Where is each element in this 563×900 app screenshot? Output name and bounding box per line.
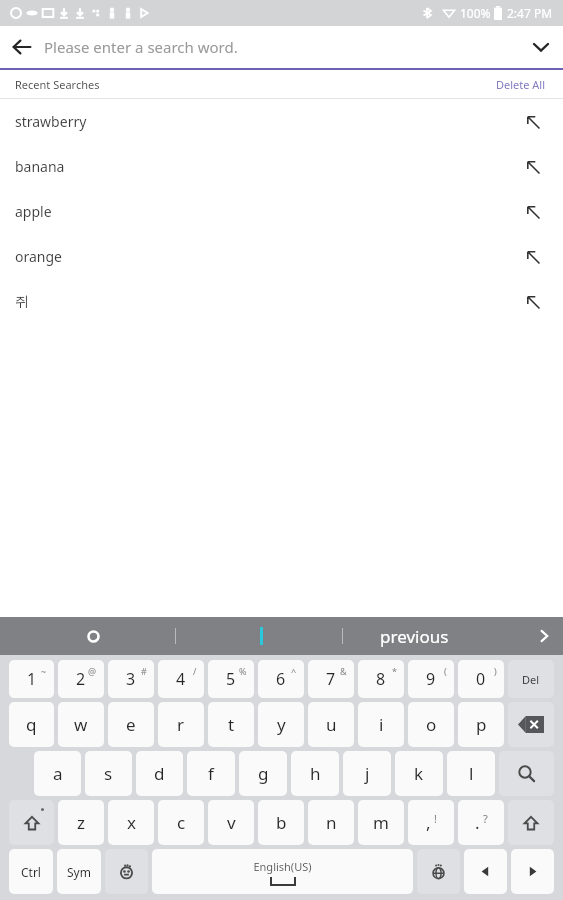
- button[interactable]: t: [208, 702, 254, 747]
- button[interactable]: Del: [508, 660, 554, 698]
- button[interactable]: c: [158, 800, 204, 845]
- button[interactable]: strawberry: [0, 99, 563, 144]
- button[interactable]: q: [9, 702, 54, 747]
- button[interactable]: Insert apple: [518, 197, 548, 227]
- button[interactable]: g: [239, 751, 287, 796]
- button[interactable]: apple: [0, 189, 563, 234]
- staticText: o: [426, 713, 437, 736]
- staticText: @: [88, 665, 97, 677]
- button[interactable]: Shift: [9, 800, 54, 845]
- button[interactable]: b: [258, 800, 304, 845]
- button[interactable]: orange: [0, 234, 563, 279]
- staticText: ^: [291, 665, 297, 677]
- button[interactable]: 4: [158, 660, 204, 698]
- button[interactable]: i: [358, 702, 404, 747]
- button[interactable]: d: [136, 751, 183, 796]
- button[interactable]: Shift: [508, 800, 554, 845]
- staticText: %: [239, 665, 247, 677]
- staticText: ?: [483, 811, 488, 826]
- button[interactable]: Insert orange: [518, 242, 548, 272]
- button[interactable]: Search: [499, 751, 554, 796]
- button[interactable]: h: [291, 751, 339, 796]
- staticText: s: [104, 762, 113, 785]
- button[interactable]: 5: [208, 660, 254, 698]
- button[interactable]: p: [458, 702, 504, 747]
- button[interactable]: Insert banana: [518, 152, 548, 182]
- button[interactable]: Please enter a search word.: [44, 26, 519, 68]
- staticText: 2: [76, 668, 86, 690]
- button[interactable]: Insert strawberry: [518, 107, 548, 137]
- button[interactable]: u: [308, 702, 354, 747]
- button[interactable]: 쥐: [0, 279, 563, 324]
- staticText: 쥐: [15, 293, 29, 311]
- button[interactable]: l: [447, 751, 495, 796]
- button[interactable]: 2: [58, 660, 104, 698]
- button[interactable]: 6: [258, 660, 304, 698]
- button[interactable]: Ctrl: [9, 849, 53, 894]
- button[interactable]: x: [108, 800, 154, 845]
- staticText: Sym: [67, 864, 91, 880]
- button[interactable]: 8: [358, 660, 404, 698]
- staticText: strawberry: [15, 112, 87, 131]
- button[interactable]: m: [358, 800, 404, 845]
- button[interactable]: k: [395, 751, 443, 796]
- staticText: Delete All: [496, 77, 546, 92]
- button[interactable]: y: [258, 702, 304, 747]
- staticText: k: [414, 762, 424, 785]
- button[interactable]: s: [85, 751, 132, 796]
- staticText: !: [434, 811, 437, 826]
- staticText: n: [326, 811, 337, 834]
- button[interactable]: r: [158, 702, 204, 747]
- button[interactable]: Next: [525, 617, 563, 655]
- button[interactable]: previous: [380, 617, 449, 655]
- button[interactable]: Voice input: [78, 621, 108, 651]
- staticText: e: [126, 713, 136, 736]
- button[interactable]: Emoji: [105, 849, 148, 894]
- staticText: t: [228, 713, 235, 736]
- button[interactable]: Change language: [417, 849, 460, 894]
- button[interactable]: v: [208, 800, 254, 845]
- staticText: 8: [376, 668, 386, 690]
- button[interactable]: Sym: [57, 849, 101, 894]
- button[interactable]: e: [108, 702, 154, 747]
- button[interactable]: Move right: [511, 849, 554, 894]
- staticText: u: [326, 713, 337, 736]
- staticText: 5: [226, 668, 236, 690]
- staticText: #: [141, 665, 147, 677]
- button[interactable]: Back: [0, 26, 44, 68]
- staticText: (: [444, 665, 447, 677]
- button[interactable]: Move left: [464, 849, 507, 894]
- button[interactable]: z: [58, 800, 104, 845]
- button[interactable]: 1: [9, 660, 54, 698]
- button[interactable]: 3: [108, 660, 154, 698]
- button[interactable]: o: [408, 702, 454, 747]
- button[interactable]: banana: [0, 144, 563, 189]
- button[interactable]: 9: [408, 660, 454, 698]
- staticText: ): [494, 665, 497, 677]
- button[interactable]: a: [34, 751, 81, 796]
- button[interactable]: w: [58, 702, 104, 747]
- button[interactable]: English(US): [152, 849, 413, 894]
- staticText: English(US): [253, 859, 312, 874]
- button[interactable]: Delete All: [494, 73, 548, 96]
- button[interactable]: Backspace: [508, 702, 554, 747]
- staticText: c: [177, 811, 186, 834]
- staticText: 100%: [460, 5, 491, 21]
- staticText: /: [193, 665, 197, 677]
- button[interactable]: .: [458, 800, 504, 845]
- staticText: orange: [15, 247, 62, 266]
- staticText: Recent Searches: [15, 77, 100, 92]
- button[interactable]: 0: [458, 660, 504, 698]
- staticText: w: [74, 713, 88, 736]
- button[interactable]: Expand: [519, 26, 563, 68]
- button[interactable]: f: [187, 751, 235, 796]
- button[interactable]: Insert 쥐: [518, 287, 548, 317]
- button[interactable]: ,: [408, 800, 454, 845]
- button[interactable]: n: [308, 800, 354, 845]
- button[interactable]: 7: [308, 660, 354, 698]
- staticText: 3: [126, 668, 136, 690]
- staticText: 2:47 PM: [507, 5, 553, 21]
- button[interactable]: j: [343, 751, 391, 796]
- staticText: x: [127, 811, 136, 834]
- staticText: 7: [326, 668, 336, 690]
